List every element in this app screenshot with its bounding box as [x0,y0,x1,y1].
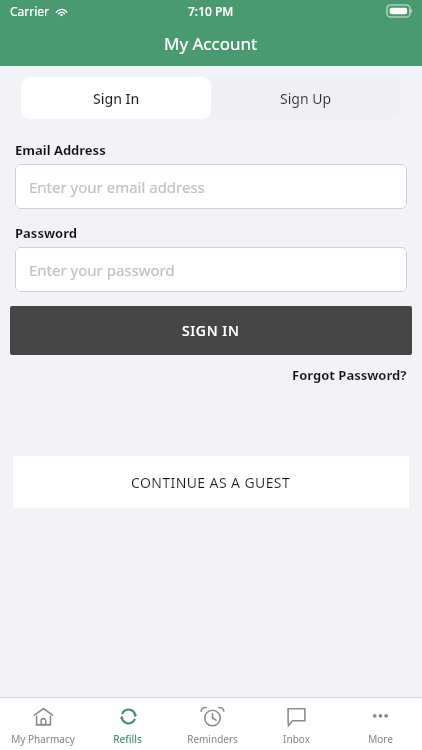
button[interactable]: Enter your password [15,247,407,292]
staticText: Carrier [10,3,50,19]
button[interactable]: Forgot Password? [292,366,407,384]
staticText: Sign Up [280,89,332,108]
button[interactable]: Sign Up [211,77,401,119]
button[interactable]: Reminders [170,697,254,750]
staticText: SIGN IN [182,321,240,340]
staticText: My Pharmacy [11,732,75,746]
staticText: Password [15,224,77,242]
staticText: CONTINUE AS A GUEST [131,473,291,492]
staticText: My Account [164,32,258,55]
staticText: Enter your email address [29,177,205,197]
staticText: 7:10 PM [188,3,234,19]
button[interactable]: More [338,697,422,750]
staticText: Email Address [15,141,106,159]
button[interactable]: Inbox [254,697,338,750]
staticText: Sign In [93,89,140,108]
button[interactable]: SIGN IN [10,306,412,355]
staticText: Enter your password [29,260,175,280]
button[interactable]: Refills [85,697,170,750]
button[interactable]: My Pharmacy [0,697,85,750]
staticText: Refills [113,732,142,746]
staticText: Forgot Password? [292,366,407,384]
button[interactable]: Enter your email address [15,164,407,209]
staticText: Reminders [187,732,238,746]
button[interactable]: Sign In [21,77,211,119]
button[interactable]: CONTINUE AS A GUEST [13,456,409,508]
staticText: More [368,732,393,746]
staticText: Inbox [283,732,310,746]
